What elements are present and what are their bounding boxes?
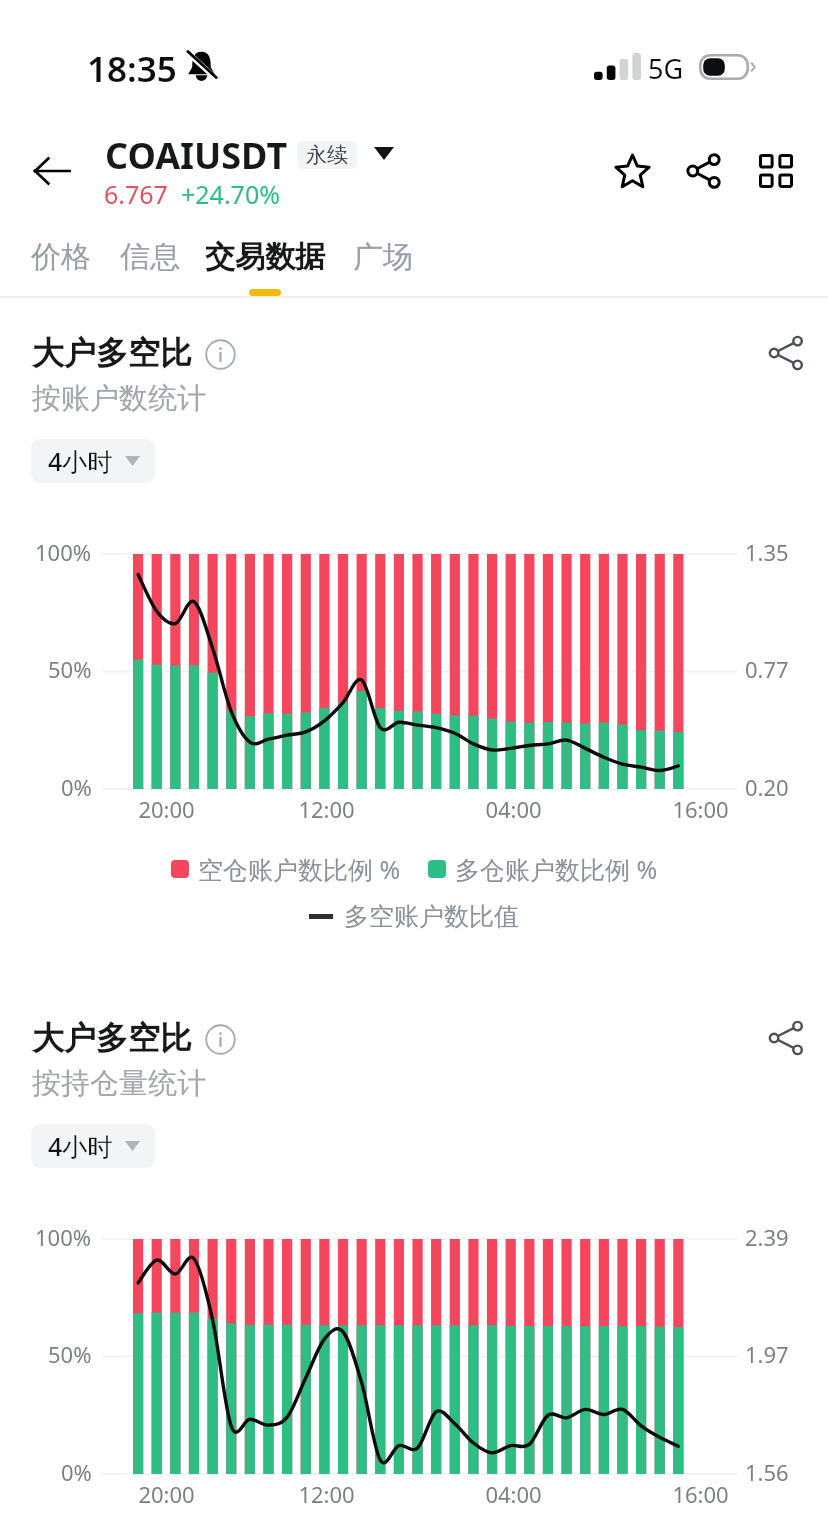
- staticText: 16:00: [672, 794, 729, 824]
- staticText: 0.20: [745, 772, 789, 802]
- staticText: 1.97: [745, 1339, 789, 1369]
- staticText: 0%: [61, 772, 92, 802]
- staticText: COAIUSDT: [105, 131, 288, 180]
- button[interactable]: Share chart: [758, 1010, 814, 1066]
- staticText: 交易数据: [205, 238, 325, 276]
- button[interactable]: 4小时: [31, 1124, 155, 1168]
- button[interactable]: Share chart: [758, 325, 814, 381]
- staticText: 18:35: [87, 45, 177, 93]
- staticText: 广场: [353, 238, 413, 276]
- staticText: 空仓账户数比例 %: [198, 852, 401, 886]
- staticText: 4小时: [48, 1129, 113, 1163]
- staticText: 04:00: [485, 794, 542, 824]
- staticText: 20:00: [138, 794, 195, 824]
- staticText: 价格: [31, 238, 91, 276]
- staticText: 大户多空比: [32, 333, 192, 373]
- button[interactable]: 广场: [353, 238, 413, 296]
- button[interactable]: More: [746, 141, 806, 201]
- staticText: +24.70%: [181, 177, 280, 211]
- staticText: 多仓账户数比例 %: [455, 852, 658, 886]
- staticText: 多空账户数比值: [344, 901, 519, 932]
- button[interactable]: Share: [674, 141, 734, 201]
- button[interactable]: 4小时: [31, 439, 155, 483]
- staticText: 1.56: [745, 1457, 789, 1487]
- staticText: 50%: [48, 654, 92, 684]
- staticText: 12:00: [298, 794, 355, 824]
- staticText: 12:00: [298, 1479, 355, 1509]
- staticText: 16:00: [672, 1479, 729, 1509]
- button[interactable]: Favorite: [602, 141, 662, 201]
- staticText: 按账户数统计: [32, 380, 206, 417]
- staticText: 100%: [35, 1222, 92, 1252]
- staticText: 大户多空比: [32, 1018, 192, 1058]
- button[interactable]: Back: [21, 140, 83, 202]
- staticText: 0.77: [745, 654, 789, 684]
- staticText: 2.39: [745, 1222, 789, 1252]
- button[interactable]: 价格: [31, 238, 91, 296]
- button[interactable]: 信息: [120, 238, 180, 296]
- staticText: 20:00: [138, 1479, 195, 1509]
- staticText: 50%: [48, 1339, 92, 1369]
- staticText: 按持仓量统计: [32, 1065, 206, 1102]
- staticText: 6.767: [104, 177, 168, 211]
- staticText: 04:00: [485, 1479, 542, 1509]
- staticText: 100%: [35, 537, 92, 567]
- staticText: 信息: [120, 238, 180, 276]
- staticText: 5G: [648, 50, 684, 87]
- staticText: 0%: [61, 1457, 92, 1487]
- staticText: 4小时: [48, 444, 113, 478]
- button[interactable]: 交易数据: [205, 238, 325, 296]
- staticText: 永续: [306, 142, 348, 168]
- staticText: 1.35: [745, 537, 789, 567]
